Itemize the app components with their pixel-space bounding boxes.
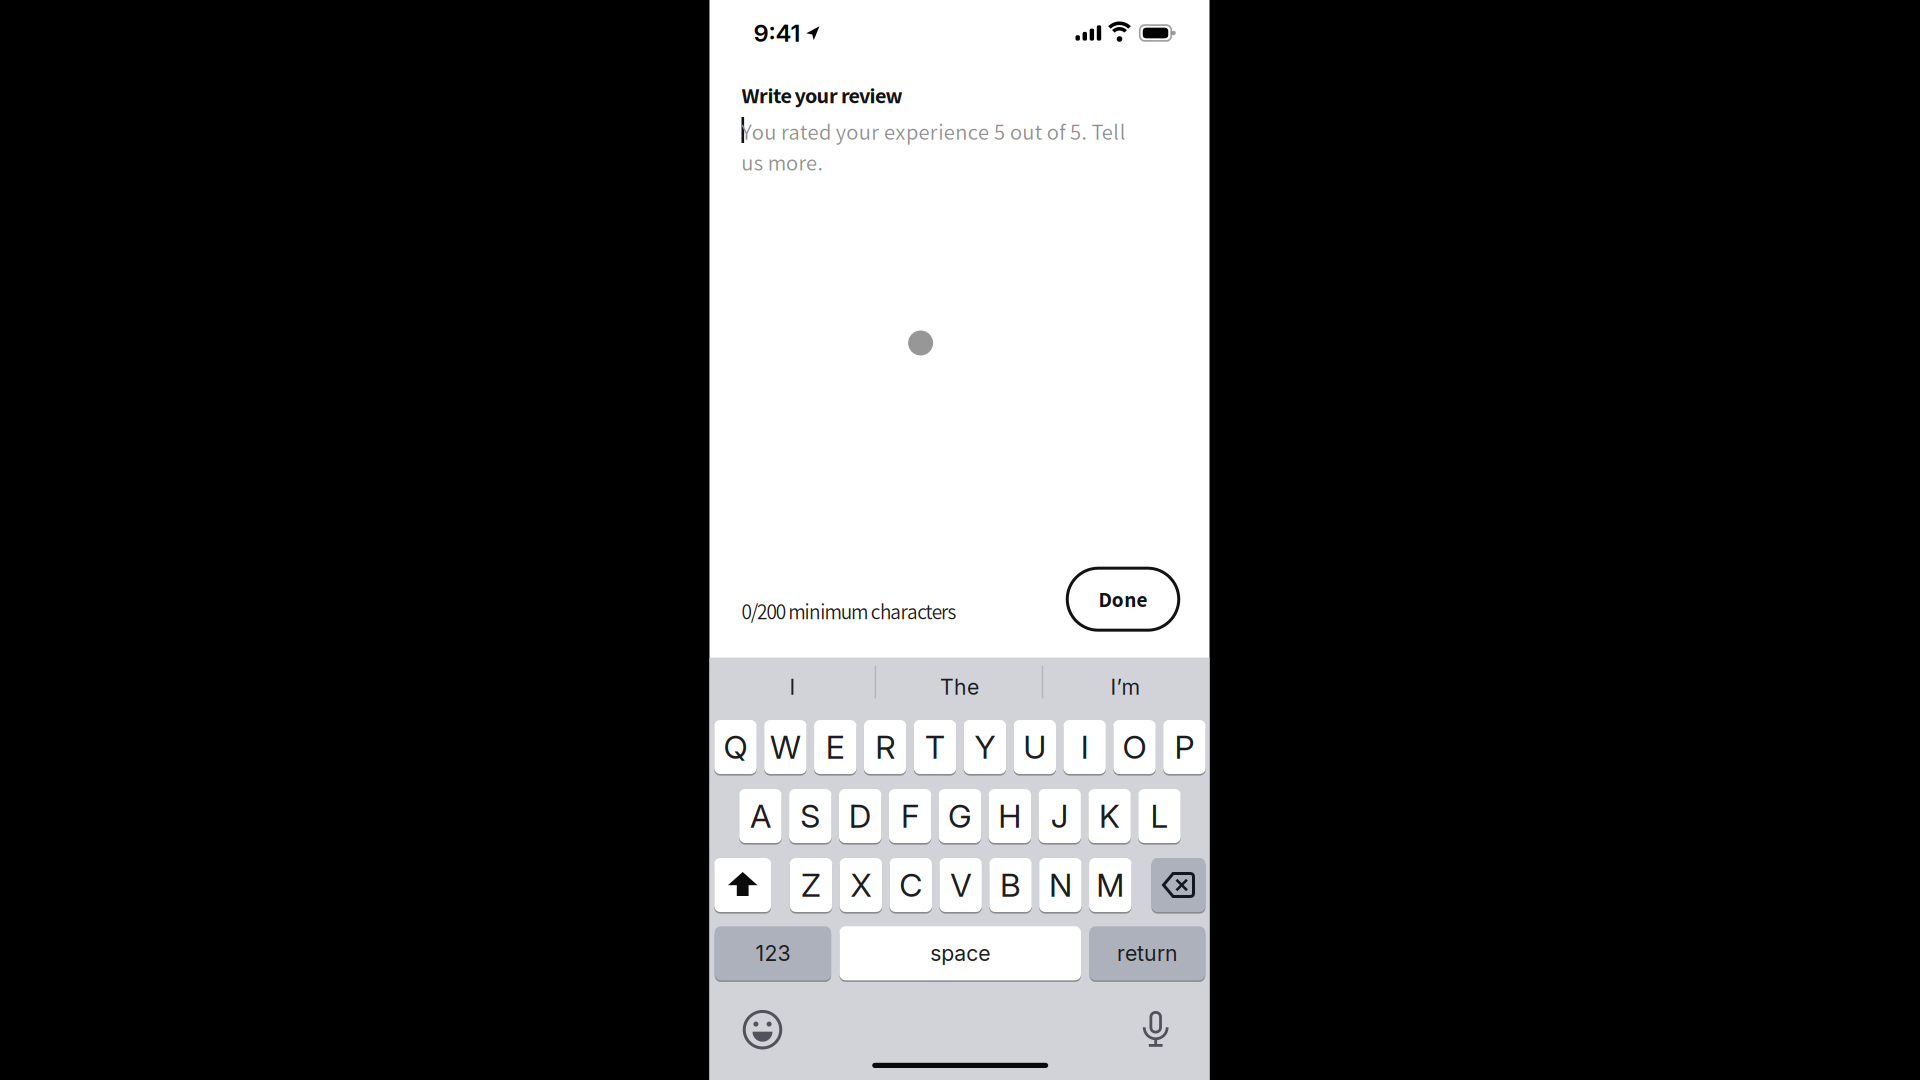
button[interactable]: space — [839, 925, 1081, 981]
button[interactable]: A — [739, 788, 782, 844]
button[interactable]: C — [890, 857, 932, 913]
staticText: X — [850, 866, 871, 904]
staticText: P — [1174, 728, 1194, 766]
staticText: You rated your experience 5 out of 5. Te… — [741, 117, 1126, 146]
staticText: W — [770, 728, 801, 766]
staticText: B — [1000, 866, 1021, 904]
button[interactable]: G — [939, 788, 981, 844]
button[interactable]: X — [840, 857, 882, 913]
button[interactable]: Emoji — [740, 1008, 784, 1052]
staticText: S — [800, 797, 820, 835]
button[interactable]: The — [889, 665, 1029, 709]
staticText: 9:41 — [753, 18, 800, 47]
button[interactable]: L — [1138, 788, 1181, 844]
button[interactable]: W — [764, 719, 807, 775]
button[interactable]: Q — [714, 719, 757, 775]
button[interactable]: V — [939, 857, 982, 913]
button[interactable]: Z — [790, 857, 832, 913]
staticText: 0/200 minimum characters — [741, 598, 956, 625]
staticText: M — [1096, 866, 1124, 904]
button[interactable]: Dictation — [1136, 1007, 1176, 1051]
button[interactable]: Y — [964, 719, 1006, 775]
button[interactable]: D — [839, 788, 881, 844]
staticText: return — [1117, 940, 1178, 966]
button[interactable]: I — [1063, 719, 1106, 775]
button[interactable]: P — [1163, 719, 1206, 775]
staticText: I — [789, 674, 795, 700]
button[interactable]: R — [864, 719, 906, 775]
staticText: C — [899, 866, 922, 904]
staticText: Y — [974, 728, 995, 766]
button[interactable]: Done — [1067, 568, 1179, 630]
button[interactable]: H — [989, 788, 1031, 844]
staticText: J — [1051, 797, 1069, 835]
button[interactable]: B — [989, 857, 1032, 913]
button[interactable]: I — [722, 665, 862, 709]
button[interactable]: 123 — [715, 925, 831, 981]
staticText: K — [1099, 797, 1120, 835]
staticText: F — [901, 797, 919, 835]
staticText: T — [925, 728, 945, 766]
button[interactable]: K — [1088, 788, 1131, 844]
staticText: H — [998, 797, 1021, 835]
button[interactable]: M — [1089, 857, 1131, 913]
button[interactable]: Shift — [714, 857, 771, 913]
staticText: U — [1023, 728, 1046, 766]
button[interactable]: N — [1039, 857, 1082, 913]
staticText: N — [1049, 866, 1072, 904]
staticText: Q — [723, 728, 747, 766]
button[interactable]: E — [814, 719, 856, 775]
button[interactable]: O — [1113, 719, 1156, 775]
staticText: D — [849, 797, 872, 835]
staticText: O — [1122, 728, 1146, 766]
staticText: Write your review — [741, 80, 902, 109]
button[interactable]: return — [1089, 925, 1205, 981]
button[interactable]: S — [789, 788, 831, 844]
button[interactable]: Delete — [1151, 857, 1205, 913]
button[interactable]: I’m — [1055, 665, 1195, 709]
staticText: E — [826, 728, 845, 766]
staticText: Done — [1099, 585, 1147, 613]
staticText: 123 — [755, 940, 790, 966]
staticText: G — [948, 797, 972, 835]
button[interactable]: J — [1038, 788, 1081, 844]
staticText: Z — [801, 866, 821, 904]
button[interactable]: U — [1014, 719, 1056, 775]
staticText: The — [940, 674, 979, 700]
staticText: I’m — [1110, 674, 1140, 700]
staticText: I — [1081, 728, 1089, 766]
staticText: L — [1150, 797, 1168, 835]
button[interactable]: F — [889, 788, 931, 844]
staticText: us more. — [741, 148, 822, 177]
button[interactable]: T — [914, 719, 956, 775]
staticText: V — [950, 866, 971, 904]
staticText: space — [930, 940, 990, 966]
staticText: R — [875, 728, 895, 766]
staticText: A — [750, 797, 771, 835]
